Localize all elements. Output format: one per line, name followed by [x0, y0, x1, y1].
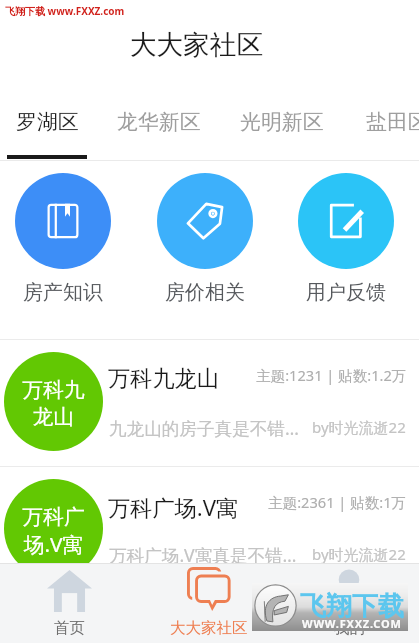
button[interactable]: 万科九 龙山	[0, 340, 419, 466]
staticText: 万科九龙山	[108, 365, 219, 393]
staticText: 大大家社区	[130, 28, 263, 62]
staticText: 房产知识	[23, 280, 103, 305]
staticText: 万科广场.V寓真是不错…	[109, 543, 297, 567]
staticText: 罗湖区	[16, 109, 79, 135]
staticText: 龙华新区	[117, 109, 201, 135]
staticText: by时光流逝22	[312, 544, 406, 564]
staticText: 万科九 龙山	[22, 377, 85, 430]
button[interactable]: 房价相关	[157, 173, 253, 305]
button[interactable]: 万科广 场.V寓	[0, 467, 419, 593]
button[interactable]: 光明新区	[220, 93, 344, 151]
staticText: 房价相关	[165, 280, 245, 305]
staticText: 主题:2361 | 贴数:1万	[268, 492, 407, 512]
staticText: 万科广 场.V寓	[22, 504, 85, 558]
other: 我的 Profile	[328, 569, 370, 611]
staticText: 飞翔下载 www.FXXZ.com	[5, 4, 125, 18]
staticText: 我的	[334, 618, 365, 638]
staticText: 主题:1231 | 贴数:1.2万	[256, 365, 407, 385]
staticText: WWW.FXXZ.COM	[302, 616, 402, 631]
button[interactable]: 罗湖区	[0, 93, 99, 151]
staticText: 首页	[54, 618, 85, 638]
button[interactable]: 盐田区	[345, 93, 419, 151]
button[interactable]: 龙华新区	[97, 93, 221, 151]
staticText: 飞翔下载	[300, 590, 404, 623]
staticText: by时光流逝22	[312, 417, 406, 437]
button[interactable]: 房产知识	[15, 173, 111, 305]
staticText: 光明新区	[240, 109, 324, 135]
staticText: 用户反馈	[306, 280, 386, 305]
other: 首页 Home	[47, 570, 92, 612]
button[interactable]: 首页 Home	[0, 564, 139, 643]
button[interactable]: 用户反馈	[298, 173, 394, 305]
button[interactable]: 大大家社区 Community	[139, 564, 279, 643]
staticText: 九龙山的房子真是不错…	[109, 416, 299, 440]
staticText: 盐田区	[366, 109, 419, 135]
other: 大大家社区 Community	[187, 567, 231, 611]
button[interactable]: 我的 Profile	[279, 564, 419, 643]
staticText: 大大家社区	[170, 618, 248, 638]
staticText: 万科广场.V寓	[108, 492, 239, 522]
